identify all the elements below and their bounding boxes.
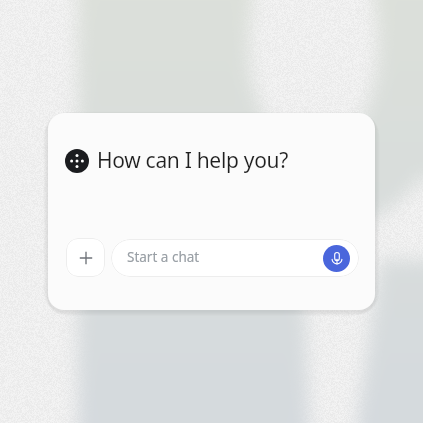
staticText: How can I help you? [97, 146, 289, 175]
staticText: Start a chat [127, 248, 200, 266]
button[interactable]: Add [66, 238, 105, 277]
button[interactable]: Start a chat [111, 239, 359, 277]
button[interactable]: Voice input [323, 245, 350, 272]
